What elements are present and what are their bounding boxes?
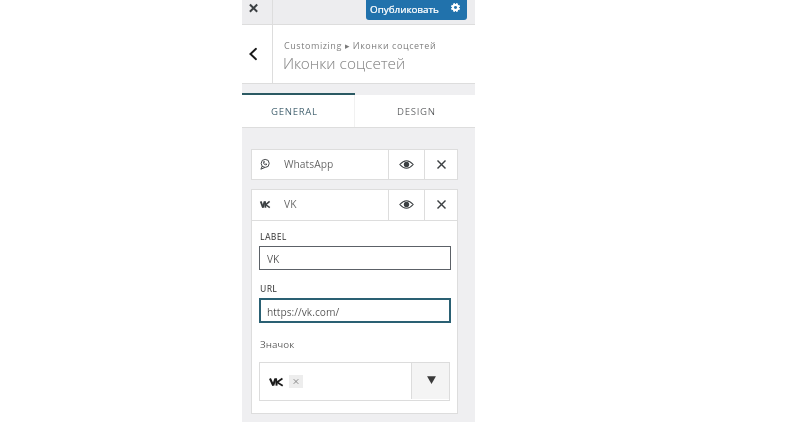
button[interactable]: Remove WhatsApp: [425, 149, 458, 180]
staticText: DESIGN: [397, 105, 436, 118]
staticText: Customizing ▸ Иконки соцсетей: [284, 39, 437, 51]
staticText: Иконки соцсетей: [283, 53, 406, 74]
button[interactable]: GENERAL: [242, 93, 355, 127]
staticText: WhatsApp: [284, 157, 334, 171]
button[interactable]: Icon: VK: [259, 362, 450, 401]
staticText: VK: [267, 252, 280, 266]
button[interactable]: Back: [242, 25, 272, 83]
button[interactable]: Remove VK: [425, 189, 458, 220]
button[interactable]: WhatsApp: [251, 149, 388, 180]
button[interactable]: https://vk.com/: [259, 298, 451, 323]
button[interactable]: VK: [259, 246, 451, 270]
staticText: GENERAL: [271, 105, 318, 118]
button[interactable]: Remove icon: [289, 375, 303, 388]
button[interactable]: Toggle visibility of VK: [389, 189, 424, 220]
staticText: Значок: [260, 338, 295, 351]
button[interactable]: DESIGN: [355, 95, 475, 127]
button[interactable]: Toggle visibility of WhatsApp: [389, 149, 424, 180]
staticText: URL: [260, 283, 278, 295]
button[interactable]: Опубликовать: [366, 0, 467, 20]
button[interactable]: Open icon list: [412, 362, 450, 399]
staticText: VK: [284, 197, 297, 211]
staticText: LABEL: [260, 231, 287, 243]
button[interactable]: VK: [251, 189, 388, 220]
staticText: Опубликовать: [370, 2, 439, 15]
button[interactable]: Close customizer: [242, 0, 272, 24]
staticText: https://vk.com/: [267, 305, 340, 319]
